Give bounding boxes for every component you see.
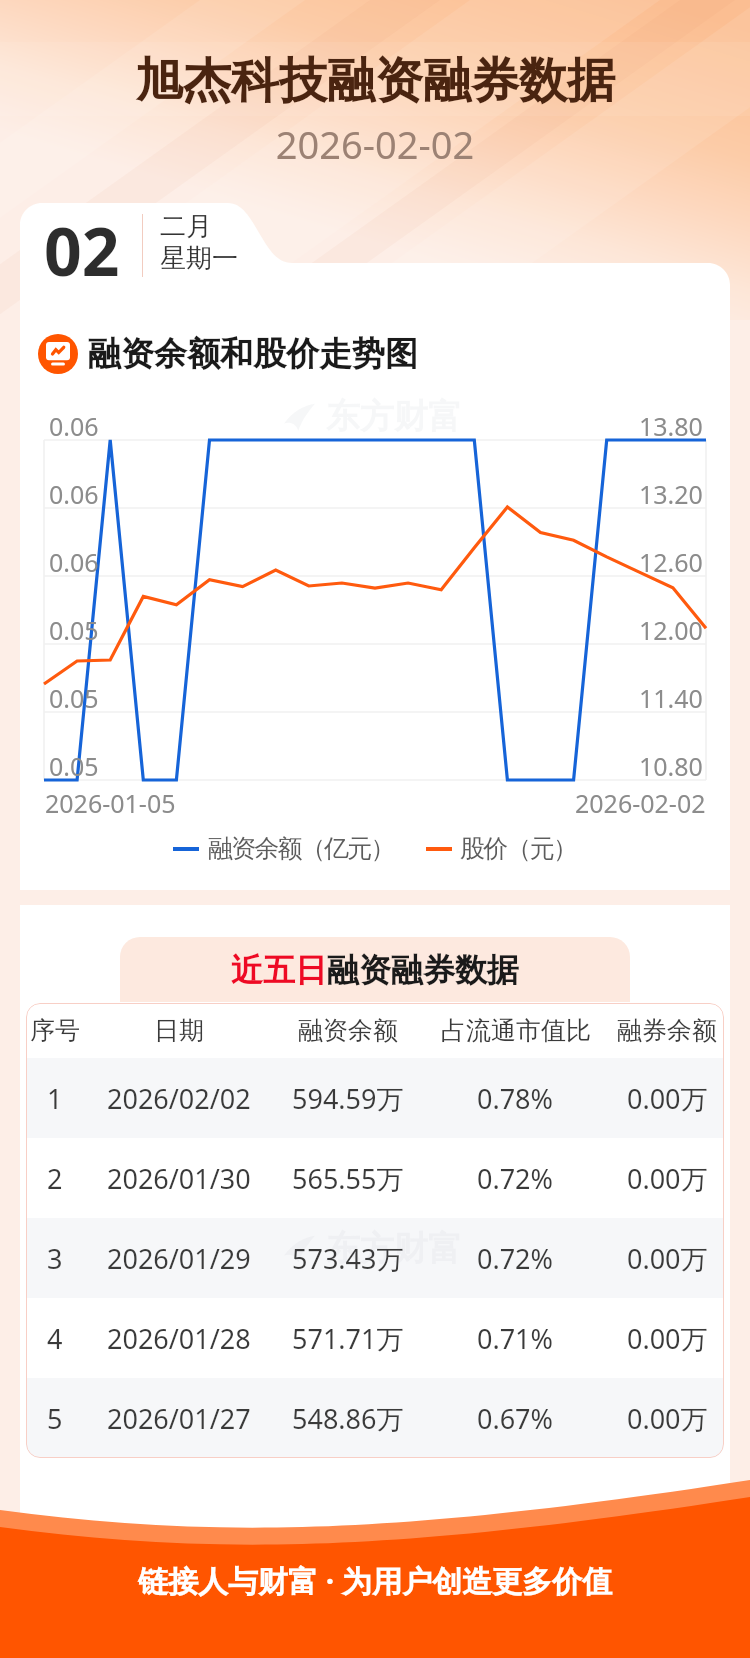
staticText: 0.00万 <box>627 1240 708 1277</box>
staticText: 4 <box>47 1320 63 1357</box>
staticText: 旭杰科技融资融券数据 <box>0 51 750 111</box>
staticText: 东方财富 <box>326 395 462 438</box>
staticText: 东方财富 <box>326 1227 462 1270</box>
staticText: 13.20 <box>639 477 703 511</box>
staticText: 2026-02-02 <box>0 118 750 170</box>
button[interactable]: 5 <box>26 1378 724 1458</box>
staticText: 11.40 <box>639 681 703 715</box>
staticText: 融券余额 <box>617 1015 717 1046</box>
staticText: 股价（元） <box>461 833 577 864</box>
staticText: 融资余额（亿元） <box>208 833 394 864</box>
button[interactable]: 3 <box>26 1218 724 1298</box>
staticText: 3 <box>47 1240 63 1277</box>
staticText: 573.43万 <box>292 1240 404 1277</box>
staticText: 占流通市值比 <box>441 1015 591 1046</box>
staticText: 序号 <box>30 1015 80 1046</box>
staticText: 0.72% <box>477 1240 554 1277</box>
staticText: 2026/01/28 <box>107 1320 251 1357</box>
staticText: 13.80 <box>639 409 703 443</box>
staticText: 2026/01/29 <box>107 1240 251 1277</box>
button[interactable]: 1 <box>26 1058 724 1138</box>
staticText: 2026-01-05 <box>45 786 176 820</box>
staticText: 0.67% <box>477 1400 554 1437</box>
staticText: 0.06 <box>49 477 99 511</box>
staticText: 2026/01/30 <box>107 1160 251 1197</box>
staticText: 565.55万 <box>292 1160 404 1197</box>
staticText: 2026/02/02 <box>107 1080 251 1117</box>
staticText: 0.06 <box>49 409 99 443</box>
staticText: 0.05 <box>49 681 99 715</box>
staticText: 1 <box>47 1080 63 1117</box>
staticText: 0.00万 <box>627 1080 708 1117</box>
staticText: 10.80 <box>639 749 703 783</box>
staticText: 链接人与财富 · 为用户创造更多价值 <box>0 1560 750 1601</box>
staticText: 02 <box>44 205 120 295</box>
staticText: 2026-02-02 <box>575 786 706 820</box>
staticText: 0.06 <box>49 545 99 579</box>
staticText: 0.78% <box>477 1080 554 1117</box>
other: 融资余额和股价走势图 <box>38 334 78 374</box>
staticText: 0.00万 <box>627 1320 708 1357</box>
staticText: 0.05 <box>49 749 99 783</box>
staticText: 0.71% <box>477 1320 554 1357</box>
staticText: 0.00万 <box>627 1400 708 1437</box>
staticText: 日期 <box>154 1015 204 1046</box>
button[interactable]: 2 <box>26 1138 724 1218</box>
staticText: 12.00 <box>639 613 703 647</box>
staticText: 571.71万 <box>292 1320 404 1357</box>
staticText: 594.59万 <box>292 1080 404 1117</box>
staticText: 548.86万 <box>292 1400 404 1437</box>
staticText: 2 <box>47 1160 63 1197</box>
staticText: 12.60 <box>639 545 703 579</box>
staticText: 近五日融资融券数据 <box>231 950 519 990</box>
staticText: 0.00万 <box>627 1160 708 1197</box>
staticText: 5 <box>47 1400 63 1437</box>
staticText: 0.05 <box>49 613 99 647</box>
staticText: 融资余额和股价走势图 <box>88 333 418 375</box>
staticText: 0.72% <box>477 1160 554 1197</box>
staticText: 星期一 <box>160 242 238 275</box>
staticText: 二月 <box>160 210 212 243</box>
staticText: 2026/01/27 <box>107 1400 251 1437</box>
button[interactable]: 4 <box>26 1298 724 1378</box>
staticText: 融资余额 <box>298 1015 398 1046</box>
